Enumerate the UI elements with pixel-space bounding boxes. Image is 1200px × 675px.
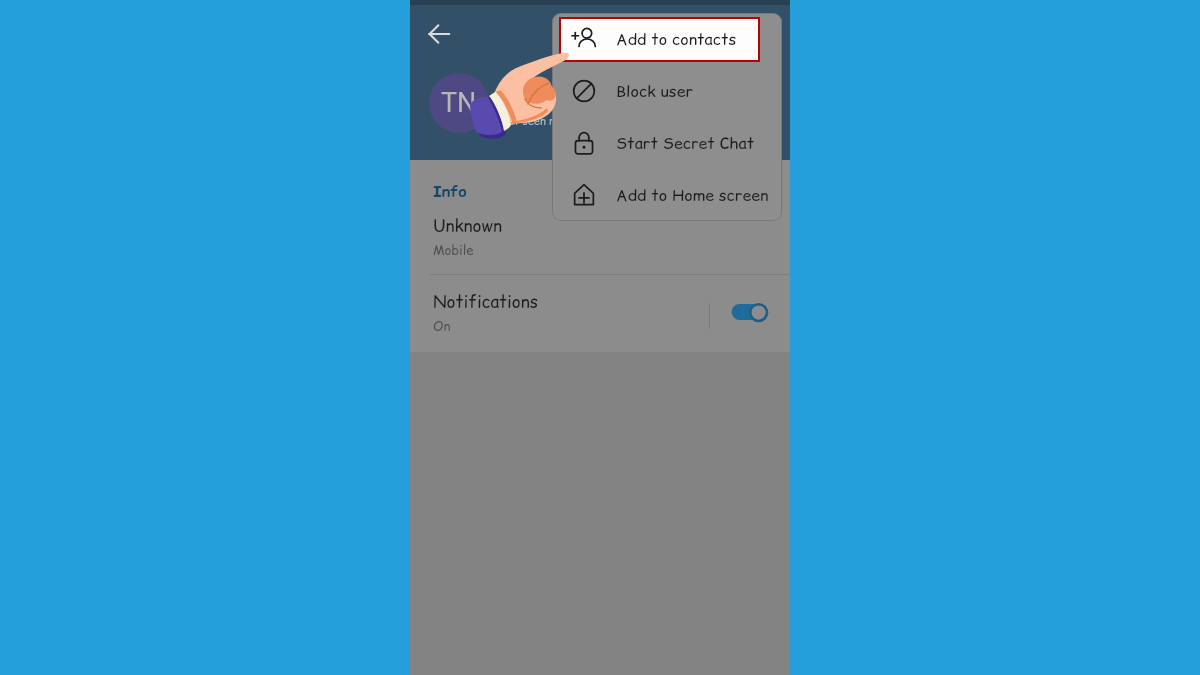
button[interactable]: Notifications (410, 282, 790, 352)
staticText: Unknown (433, 214, 502, 238)
staticText: Start Secret Chat (616, 132, 755, 154)
staticText: Add to Home screen (616, 184, 769, 206)
staticText: Mobile (433, 241, 474, 259)
staticText: last seen recently (500, 113, 592, 128)
button[interactable]: Block user (552, 65, 782, 117)
staticText: Info (433, 180, 467, 202)
button[interactable]: Add to Home screen (552, 169, 782, 221)
staticText: On (433, 317, 451, 335)
staticText: Notifications (433, 290, 538, 314)
button[interactable]: Add to contacts (552, 13, 782, 65)
staticText: Add to contacts (616, 28, 737, 50)
staticText: TN (441, 87, 477, 119)
button[interactable]: Notifications switch (729, 303, 769, 327)
staticText: Block user (616, 80, 694, 102)
button[interactable]: Back (417, 12, 460, 55)
button[interactable]: Unknown (410, 205, 790, 274)
button[interactable]: Start Secret Chat (552, 117, 782, 169)
